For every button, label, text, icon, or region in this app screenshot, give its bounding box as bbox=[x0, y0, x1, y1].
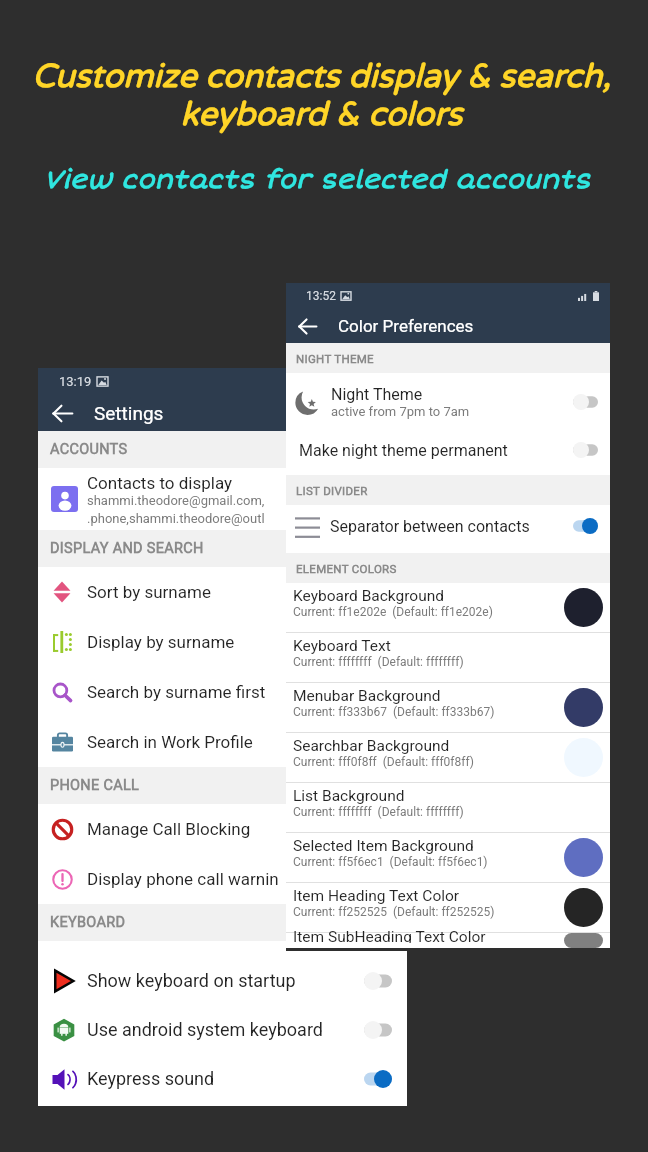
button[interactable]: Keypress sound bbox=[38, 1054, 407, 1103]
staticText: LIST DIVIDER bbox=[296, 484, 368, 497]
staticText: Current: ff5f6ec1 (Default: ff5f6ec1) bbox=[293, 855, 488, 869]
staticText: ELEMENT COLORS bbox=[296, 562, 397, 575]
button[interactable]: Toggle bbox=[567, 437, 604, 463]
staticText: Item SubHeading Text Color bbox=[293, 928, 486, 943]
button[interactable]: Separator between contacts bbox=[286, 505, 610, 547]
button[interactable]: Back bbox=[292, 311, 322, 341]
button[interactable]: Use android system keyboard bbox=[38, 1005, 407, 1054]
button[interactable]: Toggle bbox=[567, 389, 604, 415]
staticText: Selected Item Background bbox=[293, 837, 474, 855]
button[interactable]: Back bbox=[46, 397, 78, 429]
staticText: Searchbar Background bbox=[293, 737, 450, 755]
staticText: ACCOUNTS bbox=[50, 441, 128, 458]
staticText: shammi.theodore@gmail.com, .phone,shammi… bbox=[87, 493, 265, 526]
button[interactable]: Item SubHeading Text Color bbox=[286, 933, 610, 948]
button[interactable]: Night Theme bbox=[286, 373, 610, 431]
staticText: Separator between contacts bbox=[330, 517, 567, 536]
staticText: Search in Work Profile bbox=[87, 732, 253, 752]
staticText: List Background bbox=[293, 787, 405, 805]
button[interactable]: List Background bbox=[286, 783, 610, 833]
button[interactable]: Contacts to display bbox=[38, 468, 286, 530]
staticText: Current: ffffffff (Default: ffffffff) bbox=[293, 805, 464, 819]
button[interactable]: Make night theme permanent bbox=[286, 431, 610, 469]
staticText: Keyboard Text bbox=[293, 637, 391, 655]
button[interactable]: Toggle bbox=[358, 1066, 398, 1092]
button[interactable]: Searchbar Background bbox=[286, 733, 610, 783]
staticText: Use android system keyboard bbox=[87, 1019, 358, 1040]
staticText: Current: fff0f8ff (Default: fff0f8ff) bbox=[293, 755, 474, 769]
button[interactable]: Toggle bbox=[567, 513, 604, 539]
button[interactable]: Search by surname first bbox=[38, 667, 286, 717]
button[interactable]: Show keyboard on startup bbox=[38, 956, 407, 1005]
staticText: Night Theme bbox=[331, 385, 423, 404]
staticText: Contacts to display bbox=[87, 473, 233, 493]
staticText: Current: ff333b67 (Default: ff333b67) bbox=[293, 705, 495, 719]
staticText: Item Heading Text Color bbox=[293, 887, 460, 905]
staticText: Settings bbox=[94, 402, 164, 424]
staticText: active from 7pm to 7am bbox=[331, 404, 470, 419]
staticText: Current: ffffffff (Default: ffffffff) bbox=[293, 655, 464, 669]
staticText: Color Preferences bbox=[338, 316, 474, 336]
button[interactable]: Display phone call warnin bbox=[38, 854, 286, 904]
staticText: Show keyboard on startup bbox=[87, 970, 358, 991]
button[interactable]: Toggle bbox=[358, 968, 398, 994]
staticText: 13:52 bbox=[306, 289, 336, 303]
staticText: DISPLAY AND SEARCH bbox=[50, 540, 204, 557]
button[interactable]: Keyboard Background bbox=[286, 583, 610, 633]
staticText: Keyboard Background bbox=[293, 587, 445, 605]
button[interactable]: Manage Call Blocking bbox=[38, 804, 286, 854]
staticText: NIGHT THEME bbox=[296, 352, 374, 365]
staticText: PHONE CALL bbox=[50, 777, 140, 794]
staticText: Current: ff252525 (Default: ff252525) bbox=[293, 905, 495, 919]
staticText: Keypress sound bbox=[87, 1068, 358, 1089]
button[interactable]: Item Heading Text Color bbox=[286, 883, 610, 933]
button[interactable]: Menubar Background bbox=[286, 683, 610, 733]
staticText: View contacts for selected accounts bbox=[44, 164, 591, 196]
button[interactable]: Search in Work Profile bbox=[38, 717, 286, 767]
staticText: Menubar Background bbox=[293, 687, 441, 705]
staticText: Sort by surname bbox=[87, 582, 211, 602]
staticText: Make night theme permanent bbox=[299, 441, 567, 460]
button[interactable]: Selected Item Background bbox=[286, 833, 610, 883]
staticText: KEYBOARD bbox=[50, 914, 126, 931]
staticText: Display by surname bbox=[87, 632, 235, 652]
staticText: Customize contacts display & search, key… bbox=[32, 57, 611, 134]
staticText: 13:19 bbox=[59, 374, 92, 389]
staticText: Manage Call Blocking bbox=[87, 819, 251, 839]
button[interactable]: Display by surname bbox=[38, 617, 286, 667]
button[interactable]: Keyboard Text bbox=[286, 633, 610, 683]
staticText: Search by surname first bbox=[87, 682, 266, 702]
button[interactable]: Toggle bbox=[358, 1017, 398, 1043]
staticText: Current: ff1e202e (Default: ff1e202e) bbox=[293, 605, 493, 619]
staticText: Display phone call warnin bbox=[87, 869, 279, 889]
button[interactable]: Sort by surname bbox=[38, 567, 286, 617]
